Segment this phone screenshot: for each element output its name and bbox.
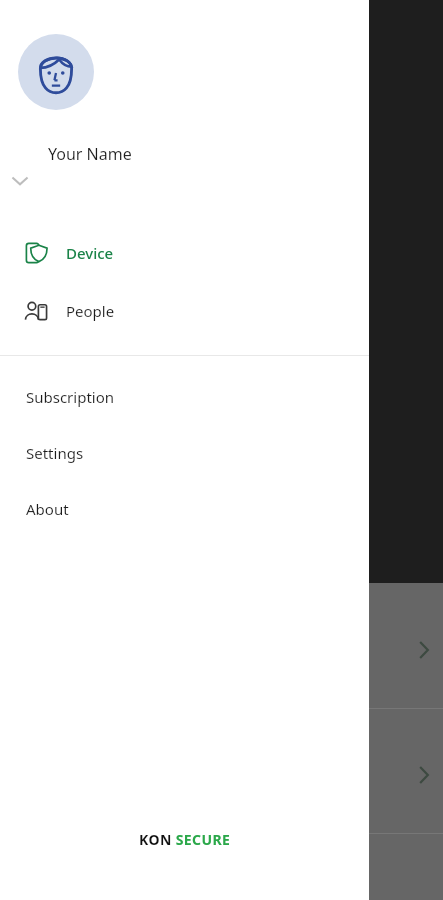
button[interactable]: About	[0, 492, 369, 526]
staticText: KON SECURE	[139, 830, 231, 849]
button[interactable]: Open item	[409, 635, 439, 665]
button[interactable]: Settings	[0, 436, 369, 470]
staticText: About	[26, 499, 69, 519]
staticText: Your Name	[48, 143, 132, 165]
button[interactable]: Open item	[409, 760, 439, 790]
staticText: Subscription	[26, 387, 115, 407]
button[interactable]: Device	[0, 235, 369, 271]
button[interactable]: People	[0, 293, 369, 329]
staticText: Settings	[26, 443, 84, 463]
staticText: Device	[66, 243, 114, 263]
button[interactable]: Your Name	[0, 133, 369, 175]
button[interactable]: Profile photo	[18, 34, 94, 110]
button[interactable]: Subscription	[0, 380, 369, 414]
staticText: People	[66, 301, 115, 321]
